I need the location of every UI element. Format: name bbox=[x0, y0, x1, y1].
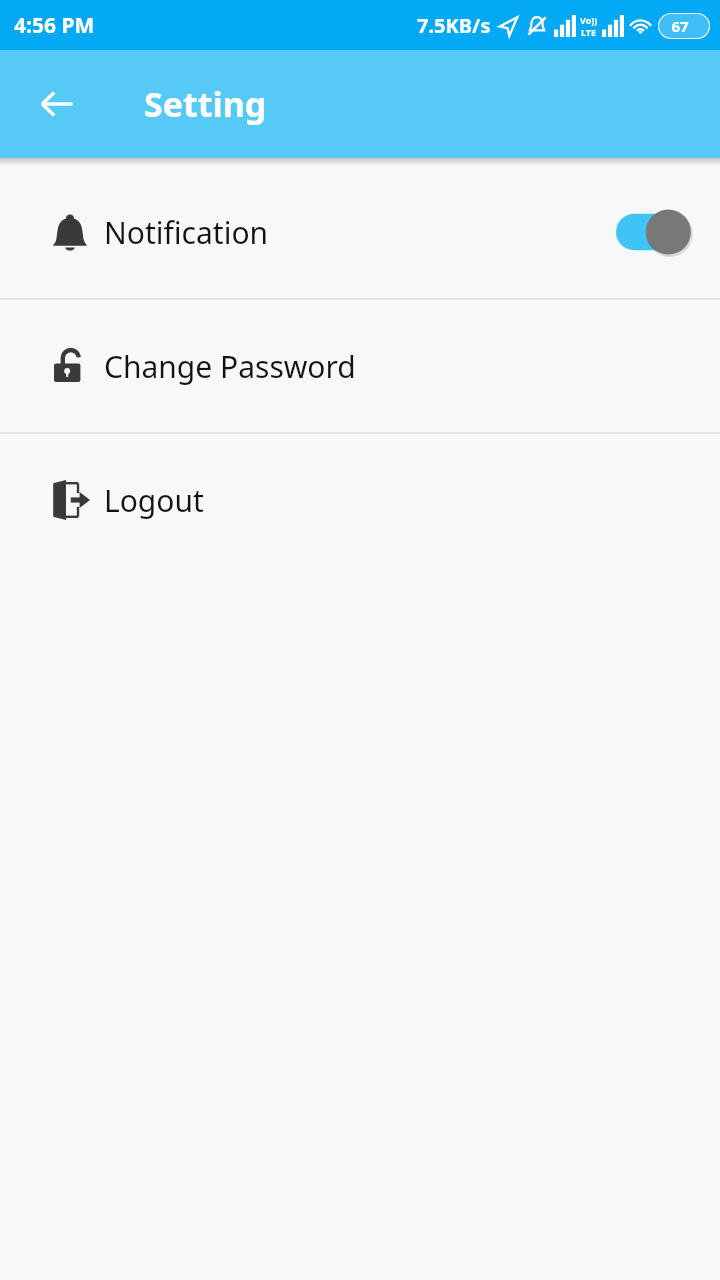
staticText: Logout bbox=[104, 480, 204, 521]
button[interactable]: Notification bbox=[0, 166, 720, 298]
button[interactable]: Notification toggle bbox=[616, 208, 696, 256]
staticText: 7.5KB/s bbox=[417, 12, 491, 39]
button[interactable]: Back bbox=[28, 75, 86, 133]
staticText: LTE bbox=[581, 26, 597, 38]
staticText: Setting bbox=[144, 81, 267, 127]
staticText: Change Password bbox=[104, 346, 356, 387]
button[interactable]: Logout bbox=[0, 434, 720, 566]
staticText: Notification bbox=[104, 212, 269, 253]
staticText: 4:56 PM bbox=[14, 11, 95, 40]
button[interactable]: Change Password bbox=[0, 300, 720, 432]
staticText: 67 bbox=[671, 16, 689, 36]
staticText: Vo)) bbox=[580, 14, 598, 26]
